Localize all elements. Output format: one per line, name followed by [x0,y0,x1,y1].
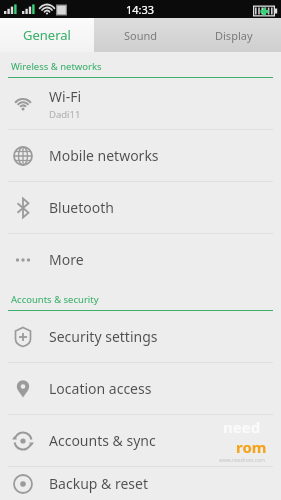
staticText: Dadi11 [49,108,81,121]
staticText: rom [236,437,267,457]
staticText: Mobile networks [49,146,159,165]
staticText: need [223,417,261,437]
staticText: Wi-Fi [49,87,82,106]
button[interactable]: Wi-Fi [0,78,281,129]
button[interactable]: Security settings [0,311,281,362]
staticText: www.needrom.com [219,457,265,464]
staticText: Bluetooth [49,198,114,217]
button[interactable]: Sound [94,18,187,52]
button[interactable]: Bluetooth [0,182,281,233]
staticText: Accounts & sync [49,431,156,450]
staticText: Accounts & security [11,293,99,306]
button[interactable]: Mobile networks [0,130,281,181]
staticText: Location access [49,379,152,398]
button[interactable]: General [0,18,94,52]
staticText: Wireless & networks [11,60,102,73]
button[interactable]: Display [187,18,281,52]
button[interactable]: More [0,234,281,285]
button[interactable]: Location access [0,363,281,414]
staticText: Sound [124,28,158,43]
staticText: More [49,250,84,269]
staticText: Backup & reset [49,474,148,493]
staticText: Security settings [49,327,158,346]
button[interactable]: Backup & reset [0,467,281,500]
staticText: 14:33 [126,2,155,17]
button[interactable]: Accounts & sync [0,415,281,466]
staticText: General [23,26,71,44]
staticText: Display [215,28,253,43]
